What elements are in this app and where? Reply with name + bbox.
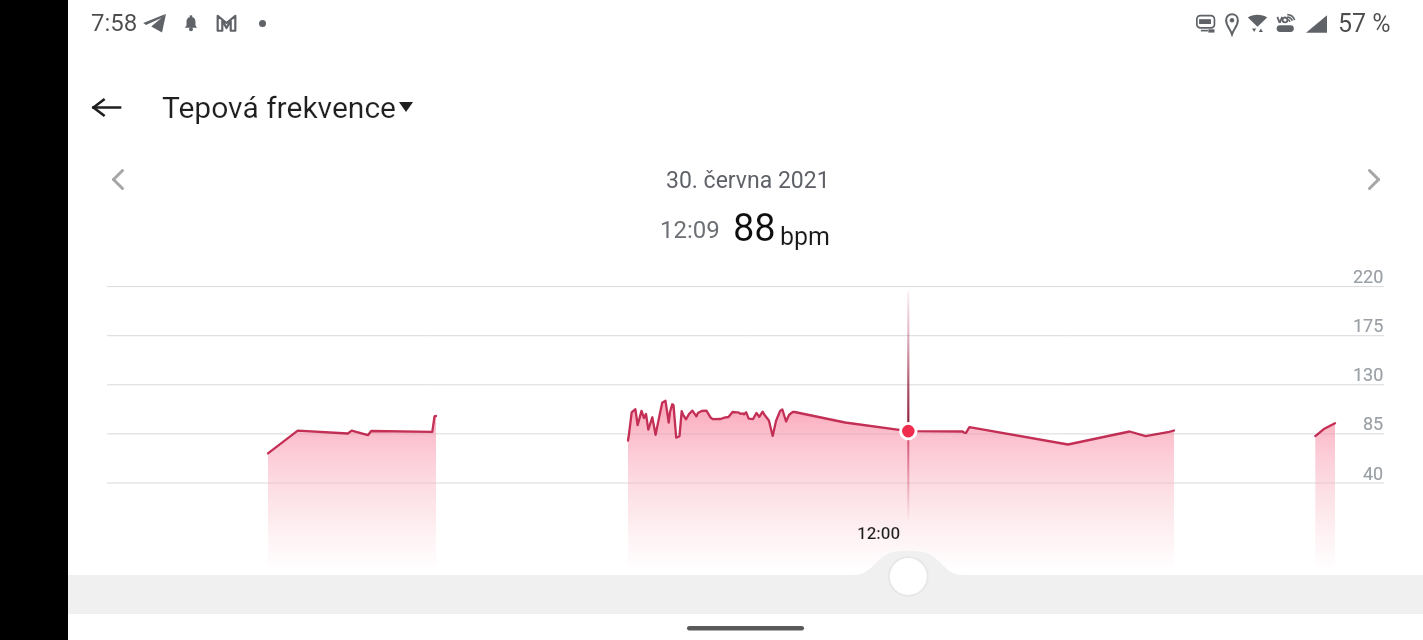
staticText: Tepová frekvence — [162, 90, 397, 125]
staticText: 88 — [733, 206, 776, 251]
staticText: 175 — [1353, 315, 1384, 336]
staticText: 57 % — [1338, 9, 1391, 38]
button[interactable]: Previous day — [95, 156, 141, 202]
button[interactable]: Tepová frekvence — [162, 84, 413, 131]
staticText: 12:00 — [857, 523, 901, 543]
staticText: 12:09 — [660, 216, 720, 244]
staticText: 30. června 2021 — [666, 167, 830, 194]
button[interactable]: Home — [670, 618, 820, 638]
button[interactable]: Next day — [1351, 156, 1397, 202]
staticText: bpm — [780, 222, 830, 251]
button[interactable]: Time range handle — [886, 554, 931, 599]
staticText: 85 — [1363, 413, 1384, 434]
staticText: 130 — [1353, 364, 1384, 385]
button[interactable]: Back — [78, 79, 134, 135]
staticText: 7:58 — [91, 9, 138, 37]
staticText: 40 — [1363, 463, 1384, 484]
staticText: 220 — [1353, 266, 1384, 287]
